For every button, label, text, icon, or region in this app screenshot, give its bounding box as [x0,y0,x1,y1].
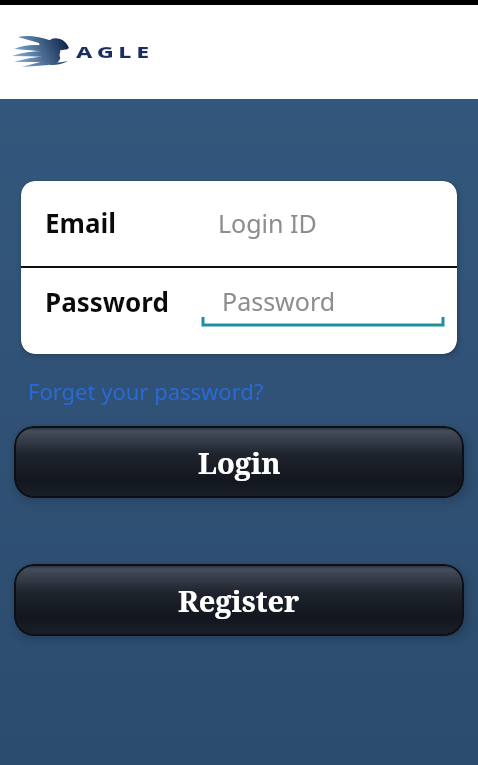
staticText: Password [45,284,169,319]
staticText: Register [178,581,300,620]
button[interactable]: Password [21,268,457,354]
staticText: Email [45,205,117,240]
button[interactable]: Email [21,181,457,267]
staticText: AGLE [76,42,155,62]
button[interactable]: Login [14,426,464,498]
button[interactable]: Forget your password? [28,376,264,406]
staticText: Password [222,284,336,318]
staticText: Login ID [218,206,317,240]
button[interactable]: Register [14,564,464,636]
staticText: Login [198,443,281,482]
